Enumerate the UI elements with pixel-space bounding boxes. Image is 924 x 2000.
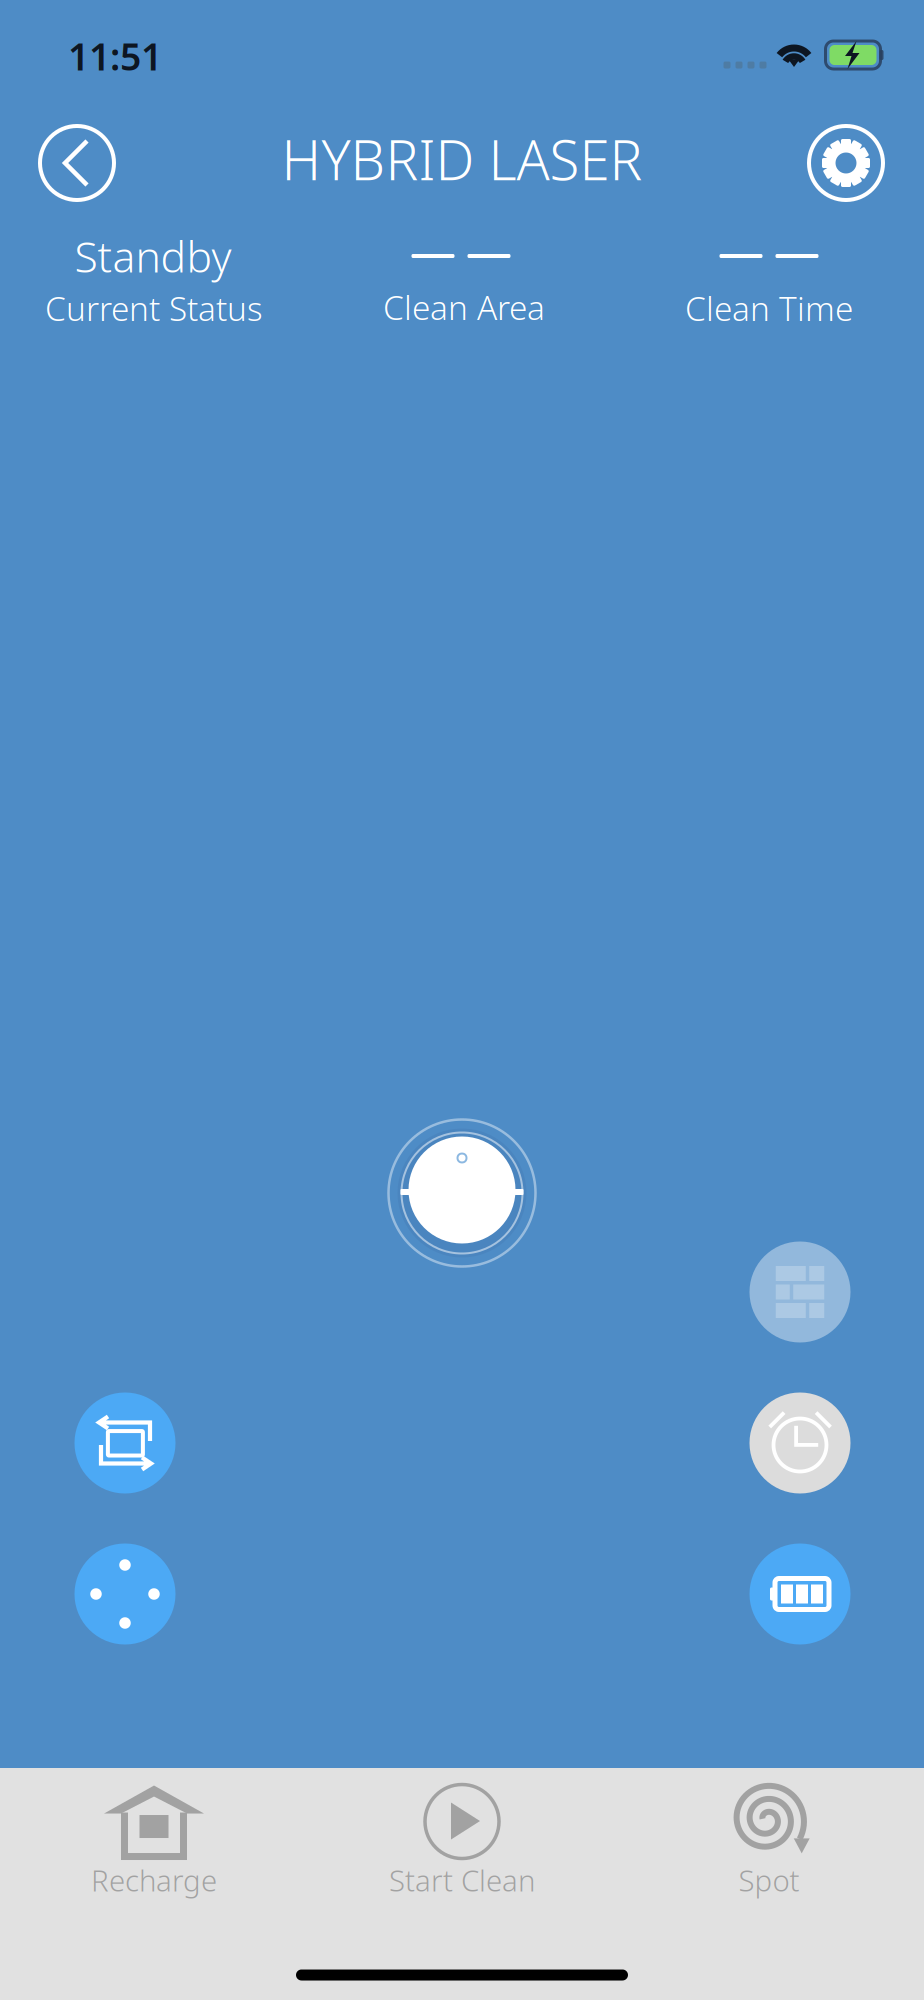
staticText: 11:51 [68,31,162,81]
staticText: Clean Area [383,285,545,329]
button[interactable]: No-go wall [749,1241,850,1342]
button[interactable]: Start Clean [312,1782,612,1900]
staticText: Standby [74,228,231,284]
staticText: Spot [738,1860,799,1899]
staticText: Current Status [45,286,263,330]
button[interactable]: Zoned clean [74,1392,175,1493]
button[interactable]: Recharge [4,1782,304,1900]
staticText: Recharge [91,1860,217,1899]
button[interactable]: Back [22,113,132,213]
button[interactable]: Schedule [749,1392,850,1493]
button[interactable]: Settings [791,113,901,213]
staticText: Start Clean [389,1860,535,1899]
button[interactable]: Spot [619,1782,919,1900]
staticText: HYBRID LASER [281,123,642,195]
staticText: Clean Time [685,286,853,330]
button[interactable]: Battery [749,1543,850,1644]
button[interactable]: Remote control [74,1543,175,1644]
